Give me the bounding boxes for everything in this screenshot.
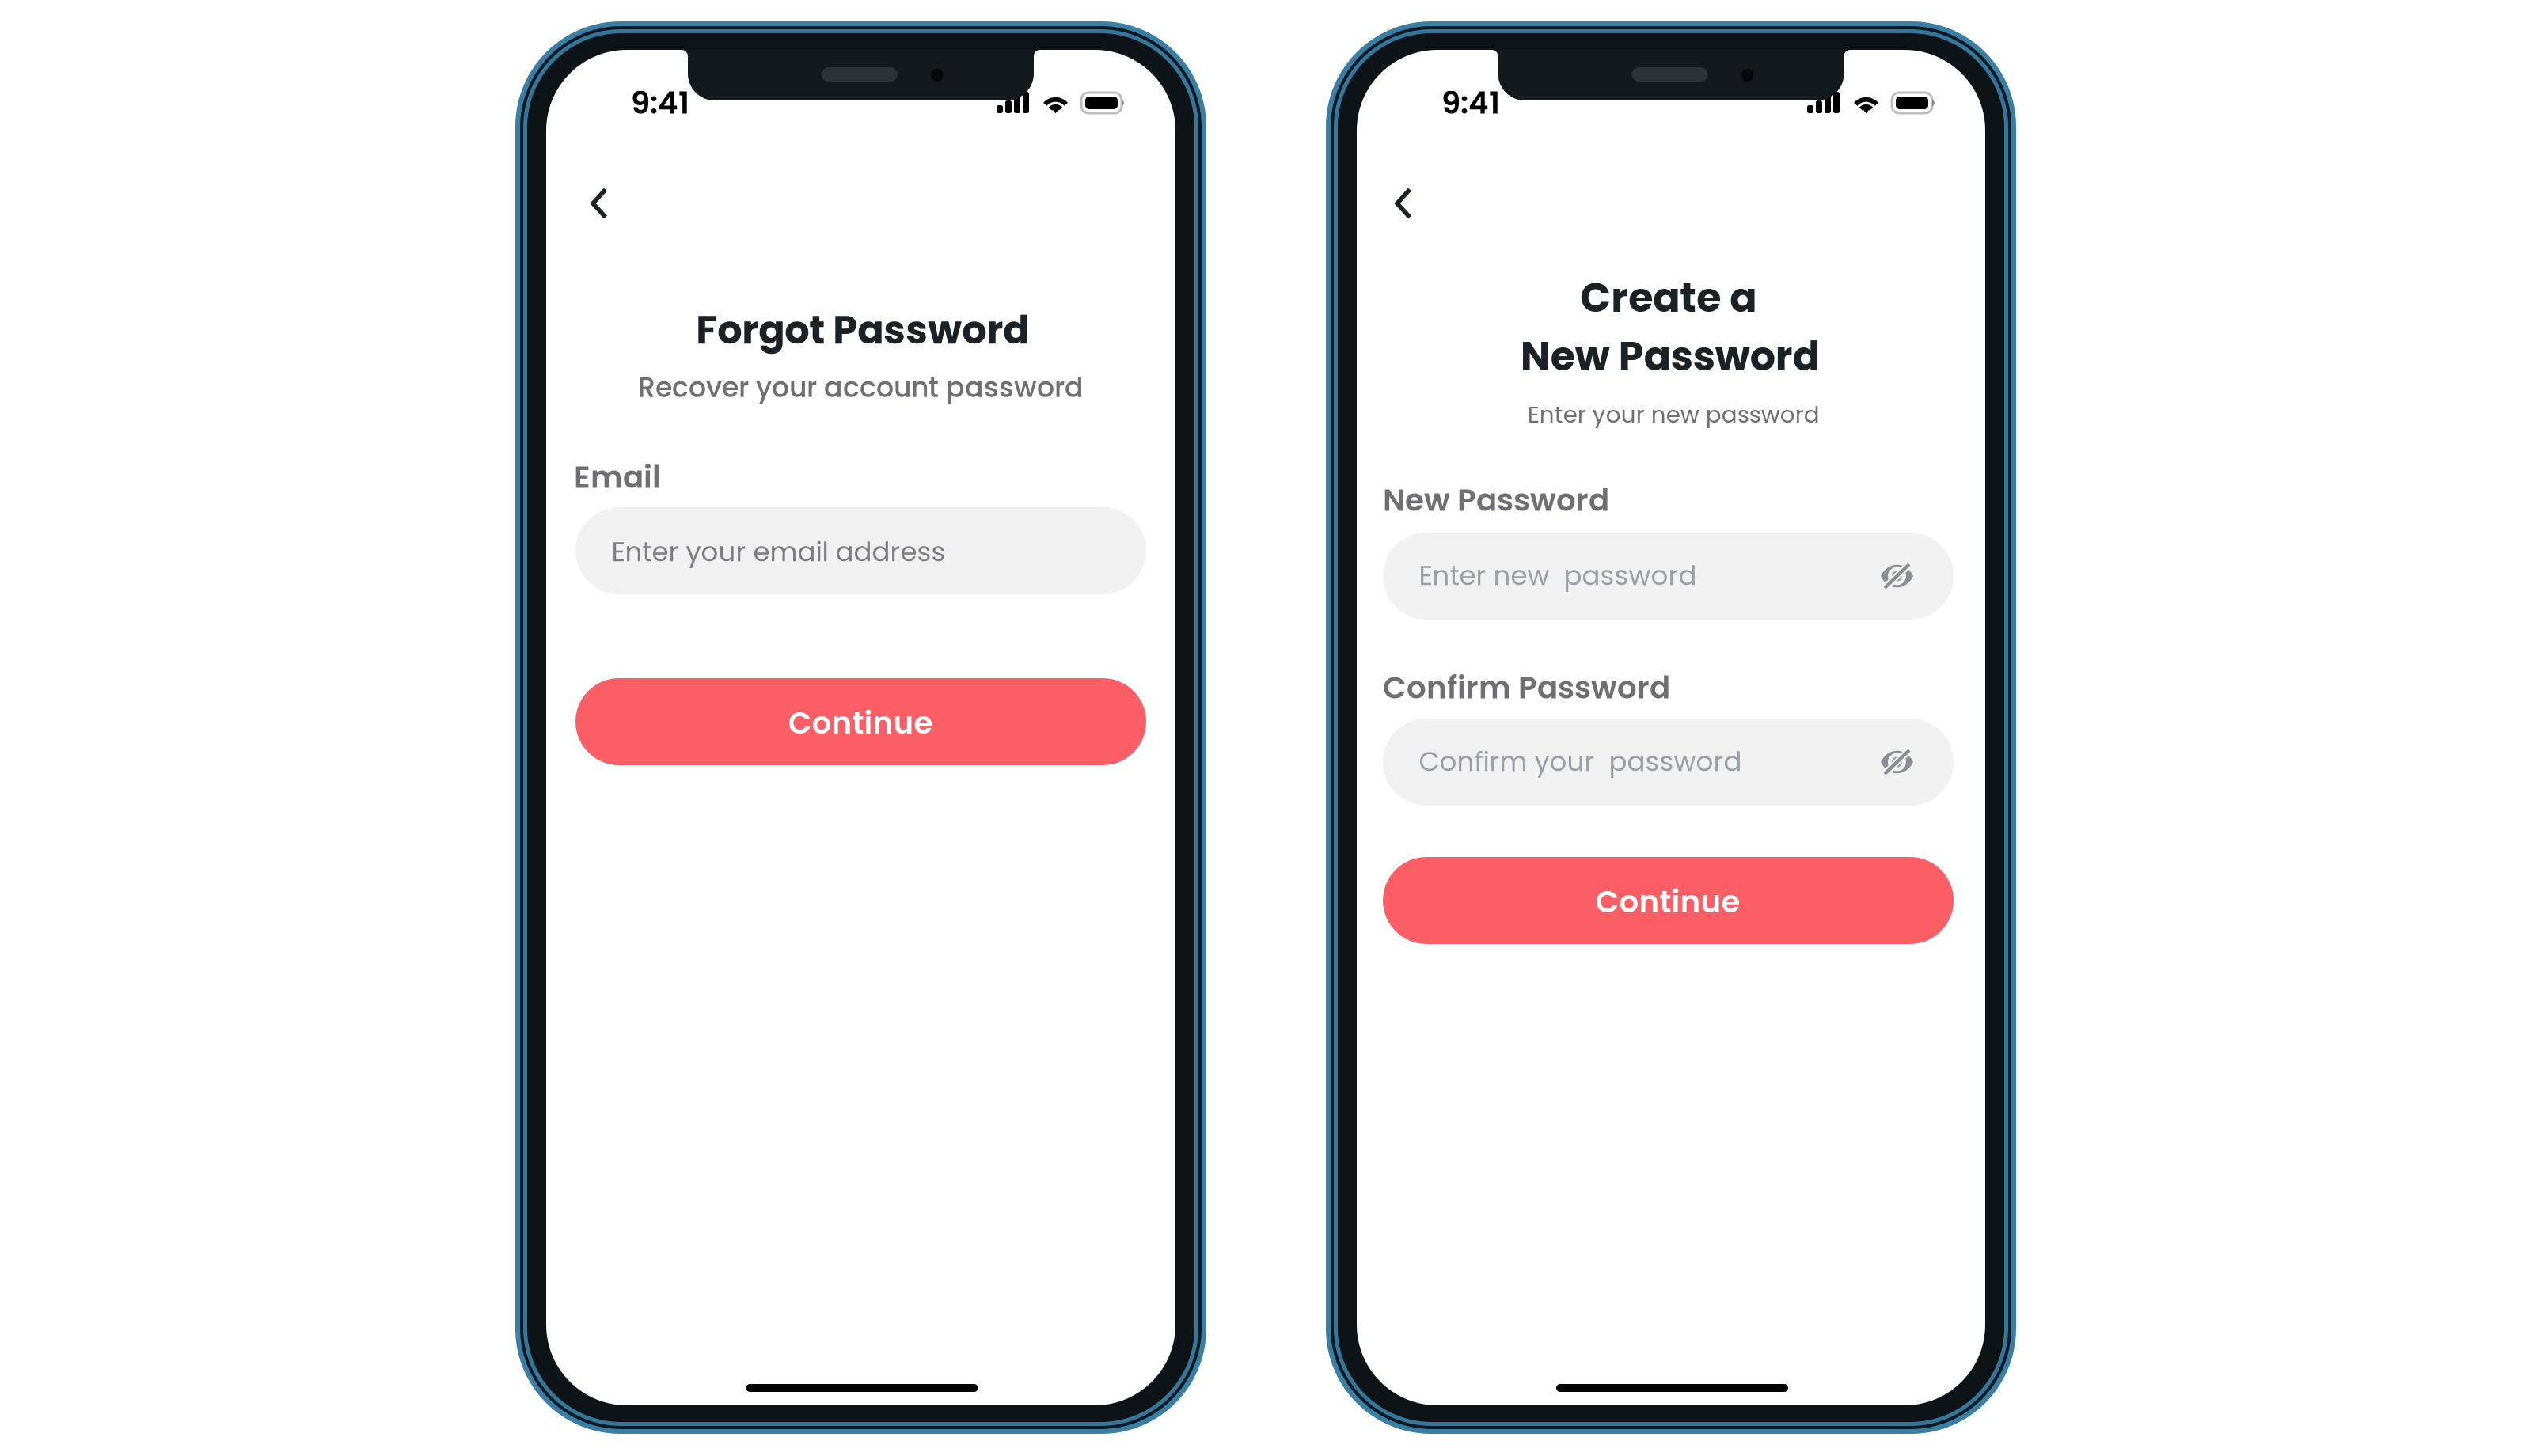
button[interactable]: Enter new password (1383, 533, 1954, 620)
staticText: Confirm your password (1419, 743, 1742, 780)
button[interactable]: Enter your email address (575, 507, 1146, 594)
staticText: Continue (788, 701, 933, 744)
staticText: Continue (1595, 880, 1740, 923)
staticText: New Password (1383, 479, 1609, 522)
button[interactable]: Confirm your password (1383, 719, 1954, 806)
button[interactable]: Back (568, 173, 629, 233)
staticText: Recover your account password (638, 368, 1084, 407)
button[interactable]: Continue (1383, 857, 1954, 944)
button[interactable]: Back (1373, 173, 1433, 233)
staticText: Enter new password (1419, 557, 1697, 594)
staticText: Confirm Password (1383, 666, 1670, 709)
staticText: New Password (1520, 328, 1820, 384)
staticText: Email (574, 456, 661, 499)
staticText: Create a (1580, 270, 1757, 326)
staticText: 9:41 (1442, 82, 1500, 124)
staticText: Enter your email address (611, 533, 946, 571)
staticText: 9:41 (631, 82, 690, 124)
staticText: Enter your new password (1528, 398, 1820, 431)
button[interactable]: Continue (575, 678, 1146, 765)
staticText: Forgot Password (696, 303, 1029, 357)
